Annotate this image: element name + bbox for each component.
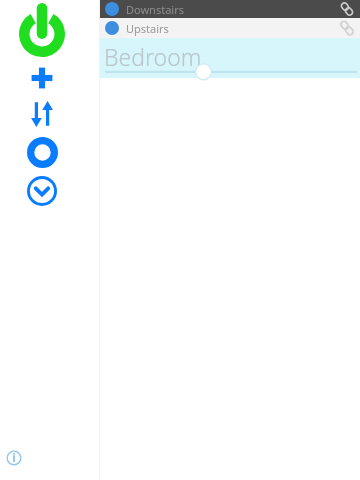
staticText: Bedroom (104, 41, 202, 72)
button[interactable]: Bedroom (100, 38, 360, 78)
button[interactable]: Power (12, 1, 72, 61)
button[interactable]: Link Upstairs (337, 18, 357, 38)
button[interactable]: Add (29, 65, 55, 91)
staticText: Downstairs (126, 2, 184, 17)
staticText: Upstairs (126, 21, 169, 36)
button[interactable]: Link Downstairs (337, 0, 357, 18)
button[interactable]: Record (27, 137, 58, 168)
button[interactable]: Collapse (26, 175, 58, 207)
button[interactable]: Transfer (28, 100, 56, 128)
button[interactable]: Downstairs (100, 0, 360, 18)
button[interactable]: Upstairs (100, 18, 360, 38)
button[interactable]: Info (6, 450, 22, 466)
